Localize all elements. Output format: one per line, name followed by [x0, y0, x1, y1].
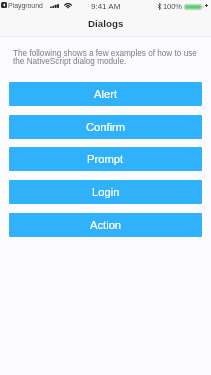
button[interactable]: Login — [9, 180, 202, 204]
staticText: Dialogs — [88, 18, 124, 29]
staticText: The following shows a few examples of ho… — [13, 49, 198, 66]
staticText: 9:41 AM — [91, 2, 121, 11]
staticText: Prompt — [87, 153, 124, 166]
staticText: Playground — [8, 2, 43, 10]
staticText: Alert — [94, 88, 118, 101]
button[interactable]: Action — [9, 213, 202, 237]
staticText: Login — [92, 186, 120, 199]
staticText: Confirm — [86, 121, 126, 134]
button[interactable]: Confirm — [9, 115, 202, 139]
button[interactable]: Back to Playground — [1, 2, 7, 8]
button[interactable]: Alert — [9, 82, 202, 106]
staticText: 100% — [163, 2, 182, 10]
button[interactable]: Prompt — [9, 147, 202, 171]
staticText: Action — [90, 219, 122, 232]
